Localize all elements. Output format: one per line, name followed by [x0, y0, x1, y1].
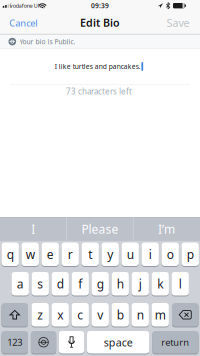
staticText: I’m [158, 221, 175, 237]
staticText: q [7, 246, 14, 262]
button[interactable]: Cancel [6, 15, 40, 31]
staticText: return [161, 336, 189, 348]
button[interactable]: space [87, 331, 149, 353]
button[interactable]: x [51, 303, 69, 326]
button[interactable]: y [101, 242, 119, 266]
staticText: t [88, 246, 92, 262]
button[interactable]: k [151, 272, 169, 295]
staticText: 73 characters left [66, 86, 132, 97]
button[interactable]: t [81, 242, 99, 266]
button[interactable]: I [0, 217, 66, 241]
staticText: 123 [7, 336, 22, 348]
button[interactable]: r [61, 242, 79, 266]
staticText: vodafone UK [10, 2, 41, 9]
staticText: w [26, 246, 35, 262]
staticText: Save [166, 16, 189, 30]
button[interactable]: f [71, 272, 89, 295]
staticText: Cancel [9, 17, 37, 29]
staticText: Please [81, 221, 118, 237]
button[interactable]: d [51, 272, 69, 295]
button[interactable]: m [151, 303, 169, 326]
staticText: a [17, 276, 24, 292]
staticText: e [47, 246, 54, 262]
button[interactable]: s [31, 272, 49, 295]
staticText: v [97, 307, 103, 323]
staticText: g [97, 276, 104, 292]
button[interactable]: i [141, 242, 159, 266]
staticText: z [37, 307, 43, 323]
staticText: x [57, 307, 63, 323]
staticText: d [57, 276, 64, 292]
button[interactable]: Please [67, 217, 133, 241]
button[interactable]: b [111, 303, 129, 326]
staticText: Your bio is Public. [19, 37, 75, 46]
staticText: j [139, 276, 142, 292]
staticText: p [187, 246, 194, 262]
button[interactable]: e [41, 242, 59, 266]
staticText: k [157, 276, 163, 292]
button[interactable]: n [131, 303, 149, 326]
button[interactable]: u [121, 242, 139, 266]
button[interactable]: Numbers [1, 331, 28, 353]
staticText: y [107, 246, 113, 262]
button[interactable]: I’m [134, 217, 200, 241]
staticText: i [149, 246, 152, 262]
staticText: m [155, 307, 166, 323]
staticText: h [117, 276, 124, 292]
button[interactable]: g [91, 272, 109, 295]
button[interactable]: c [71, 303, 89, 326]
button[interactable]: j [131, 272, 149, 295]
staticText: 09:39 [91, 1, 109, 10]
staticText: space [104, 335, 133, 349]
button[interactable]: Save [165, 15, 191, 31]
button[interactable]: l [171, 272, 189, 295]
button[interactable]: o [161, 242, 179, 266]
staticText: l [179, 276, 182, 292]
button[interactable]: h [111, 272, 129, 295]
staticText: r [68, 246, 73, 262]
button[interactable]: q [1, 242, 19, 266]
staticText: u [127, 246, 134, 262]
staticText: c [77, 307, 83, 323]
button[interactable]: z [31, 303, 49, 326]
staticText: I [31, 221, 35, 237]
button[interactable]: p [181, 242, 199, 266]
button[interactable]: Shift [1, 303, 28, 326]
button[interactable]: a [11, 272, 29, 295]
button[interactable]: Next keyboard [31, 331, 56, 353]
button[interactable]: return [152, 331, 198, 353]
button[interactable]: v [91, 303, 109, 326]
staticText: o [167, 246, 174, 262]
staticText: I like turtles and pancakes. [55, 62, 141, 71]
button[interactable]: w [21, 242, 39, 266]
staticText: n [137, 307, 144, 323]
staticText: b [117, 307, 124, 323]
staticText: s [37, 276, 43, 292]
button[interactable]: Delete [172, 303, 198, 326]
staticText: Edit Bio [80, 15, 120, 30]
button[interactable]: Dictate [59, 331, 84, 353]
staticText: f [78, 276, 82, 292]
